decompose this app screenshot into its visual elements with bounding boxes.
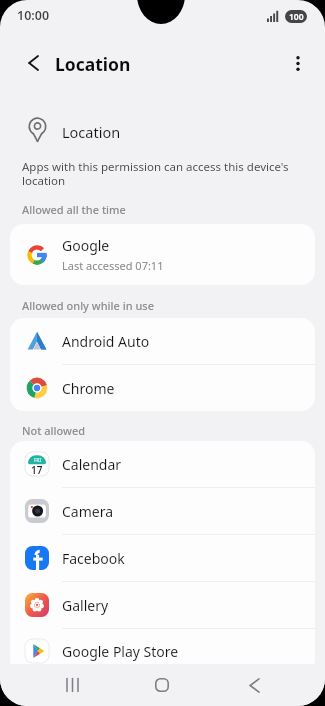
staticText: Gallery (62, 596, 109, 615)
staticText: Allowed all the time (22, 202, 126, 217)
staticText: Not allowed (22, 423, 86, 438)
staticText: 10:00 (17, 7, 50, 24)
button[interactable]: Google (10, 224, 315, 285)
button[interactable]: Facebook (10, 535, 315, 581)
button[interactable]: Chrome (10, 365, 315, 411)
button[interactable] (282, 46, 314, 80)
staticText: FRI (34, 457, 42, 463)
button[interactable] (142, 665, 182, 705)
button[interactable] (52, 665, 92, 705)
staticText: Google Play Store (62, 642, 179, 661)
button[interactable]: Camera (10, 488, 315, 534)
button[interactable]: Android Auto (10, 318, 315, 364)
staticText: Location (62, 122, 121, 142)
staticText: Camera (62, 502, 114, 521)
staticText: 100 (289, 11, 304, 23)
staticText: Last accessed 07:11 (62, 258, 164, 273)
staticText: Location (55, 52, 131, 76)
button[interactable] (234, 665, 274, 705)
staticText: 17 (31, 463, 43, 477)
staticText: Android Auto (62, 332, 150, 351)
staticText: Chrome (62, 379, 115, 398)
staticText: Facebook (62, 549, 125, 568)
staticText: Allowed only while in use (22, 298, 154, 313)
staticText: Apps with this permission can access thi… (22, 159, 289, 189)
button[interactable] (14, 46, 52, 80)
staticText: Google (62, 236, 110, 255)
button[interactable]: Calendar (10, 441, 315, 487)
button[interactable]: Gallery (10, 582, 315, 628)
button[interactable]: Google Play Store (10, 629, 315, 673)
staticText: Calendar (62, 455, 122, 474)
